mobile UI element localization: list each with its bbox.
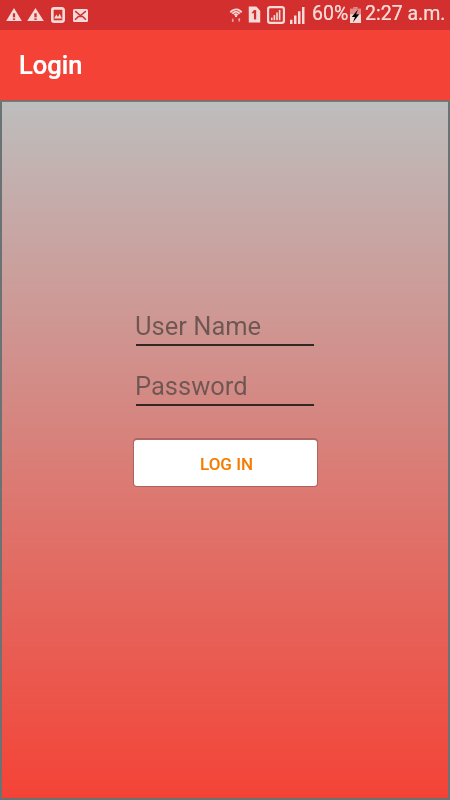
staticText: User Name: [135, 311, 262, 341]
staticText: LOG IN: [200, 454, 254, 474]
button[interactable]: User Name: [136, 302, 314, 346]
staticText: 60%: [312, 2, 349, 25]
button[interactable]: LOG IN: [134, 440, 317, 486]
staticText: 2:27 a.m.: [365, 2, 446, 25]
button[interactable]: Password: [136, 362, 314, 406]
staticText: Login: [19, 50, 83, 80]
staticText: Password: [135, 371, 248, 401]
